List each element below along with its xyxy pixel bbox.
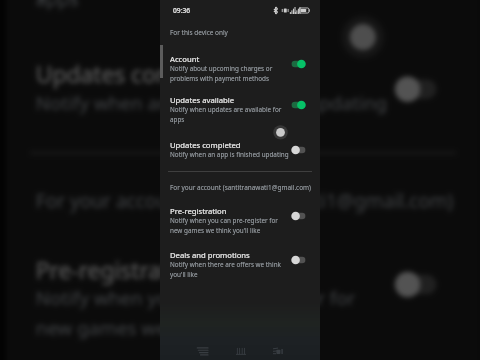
staticText: Notify when you can pre-register for new… <box>170 216 278 235</box>
button[interactable]: Updates completed <box>6 60 480 116</box>
staticText: Pre-registration <box>36 255 204 285</box>
button[interactable]: Switch off <box>394 270 438 299</box>
button[interactable]: Home <box>233 343 249 359</box>
button[interactable]: Account <box>160 54 320 83</box>
staticText: For this device only <box>170 28 228 37</box>
button[interactable]: Updates completed <box>160 140 320 159</box>
button[interactable]: Pre-registration <box>6 255 480 341</box>
button[interactable]: Updates available <box>6 0 480 12</box>
staticText: Notify when updates are available for ap… <box>36 0 367 12</box>
staticText: For your account (santitranawati1@gmail.… <box>170 183 312 192</box>
staticText: 09:36 <box>173 6 191 15</box>
button[interactable]: Switch off <box>291 211 306 221</box>
staticText: Notify when updates are available for ap… <box>170 105 282 124</box>
button[interactable]: Deals and promotions <box>160 250 320 279</box>
button[interactable]: Back <box>270 343 286 359</box>
staticText: Notify when an app is finished updating <box>170 150 289 159</box>
staticText: For your account (santitranawati1@gmail.… <box>36 187 456 213</box>
button[interactable]: Switch on <box>291 100 306 110</box>
button[interactable]: Pre-registration <box>160 206 320 235</box>
staticText: Notify about upcoming charges or problem… <box>170 64 273 83</box>
staticText: Updates completed <box>36 60 246 89</box>
staticText: Updates available <box>170 95 235 105</box>
button[interactable]: Switch off <box>394 74 438 104</box>
staticText: Notify when an app is finished updating <box>36 89 388 116</box>
staticText: Updates completed <box>170 140 241 150</box>
staticText: Notify when there are offers we think yo… <box>170 260 281 279</box>
staticText: Account <box>170 54 200 64</box>
button[interactable]: Recent apps <box>194 343 210 359</box>
button[interactable]: Switch off <box>291 145 306 155</box>
button[interactable]: Switch off <box>291 255 306 265</box>
staticText: Notify when you can pre-register for new… <box>36 285 355 341</box>
staticText: Pre-registration <box>170 206 227 216</box>
button[interactable]: Switch on <box>291 59 306 69</box>
staticText: Deals and promotions <box>170 250 250 260</box>
button[interactable]: Updates available <box>160 95 320 124</box>
